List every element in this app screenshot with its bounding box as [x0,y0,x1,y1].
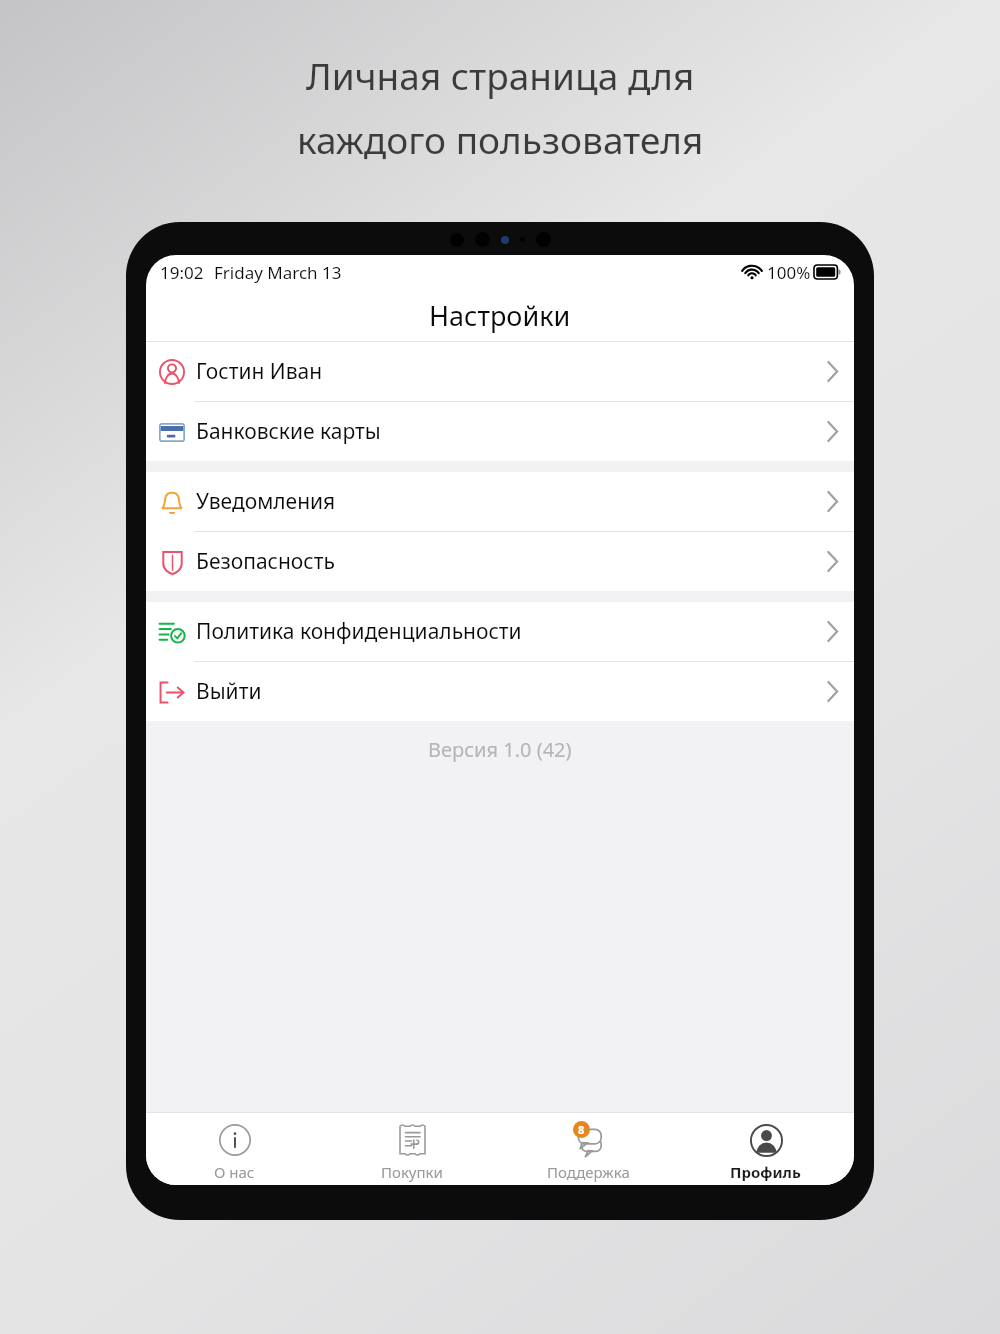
staticText: Личная страница для [306,50,695,100]
staticText: каждого пользователя [297,114,704,164]
staticText: О нас [214,1162,255,1182]
button[interactable]: 8 [500,1113,677,1185]
button[interactable]: Уведомления [146,472,854,531]
button[interactable]: Профиль [677,1113,854,1185]
staticText: Friday March 13 [214,261,342,284]
staticText: Поддержка [547,1162,630,1182]
staticText: Выйти [196,677,262,706]
button[interactable]: Выйти [146,662,854,721]
staticText: 100% [767,261,811,284]
button[interactable]: Политика конфиденциальности [146,602,854,661]
staticText: Покупки [381,1162,443,1182]
staticText: 19:02 [160,261,204,284]
staticText: Гостин Иван [196,357,323,386]
button[interactable]: Безопасность [146,532,854,591]
staticText: Профиль [730,1162,801,1182]
staticText: Версия 1.0 (42) [428,736,572,763]
staticText: Политика конфиденциальности [196,617,522,646]
button[interactable]: О нас [146,1113,323,1185]
staticText: Уведомления [196,487,336,516]
staticText: Безопасность [196,547,335,576]
button[interactable]: Покупки [323,1113,500,1185]
staticText: 8 [578,1122,585,1137]
staticText: Настройки [429,297,571,334]
staticText: Банковские карты [196,417,381,446]
button[interactable]: Банковские карты [146,402,854,461]
button[interactable]: Гостин Иван [146,342,854,401]
